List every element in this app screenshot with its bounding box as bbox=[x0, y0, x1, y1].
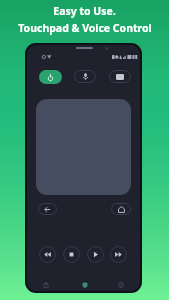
button[interactable]: Back bbox=[38, 203, 57, 215]
button[interactable]: Home bbox=[39, 278, 53, 292]
button[interactable]: Settings bbox=[114, 278, 128, 292]
button[interactable]: Keyboard bbox=[109, 70, 131, 83]
button[interactable]: Voice bbox=[74, 70, 96, 83]
button[interactable]: Power bbox=[39, 70, 62, 84]
staticText: Easy to Use. bbox=[53, 4, 116, 18]
button[interactable]: Play bbox=[87, 246, 104, 263]
button[interactable]: Protection bbox=[78, 278, 92, 292]
staticText: Touchpad & Voice Control bbox=[18, 21, 152, 35]
button[interactable]: Forward bbox=[110, 246, 127, 263]
button[interactable]: Touchpad bbox=[36, 99, 131, 195]
button[interactable]: Stop bbox=[63, 246, 80, 263]
button[interactable]: Rewind bbox=[39, 246, 56, 263]
button[interactable]: Home bbox=[111, 203, 131, 215]
